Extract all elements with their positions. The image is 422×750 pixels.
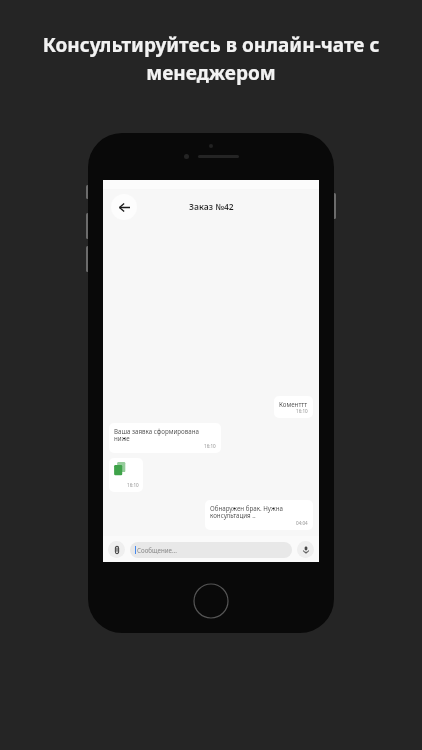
button[interactable]: Attach file [108,541,125,558]
button[interactable]: Обнаружен брак. Нужна консультация .. [205,500,313,530]
button[interactable]: Коменттт [274,396,313,418]
button[interactable]: Back [111,194,137,220]
staticText: 04:04 [296,520,308,526]
button[interactable]: Voice message [297,541,314,558]
staticText: Ваша заявка сформирована ниже [114,427,216,443]
staticText: Заказ №42 [189,201,234,213]
staticText: Консультируйтесь в онлайн-чате с менедже… [24,32,398,86]
staticText: Сообщение... [137,546,177,554]
staticText: 16:10 [296,408,308,414]
button[interactable]: Сообщение... [130,542,292,558]
button[interactable]: Attachment [109,458,143,492]
staticText: 16:10 [204,443,216,449]
staticText: Обнаружен брак. Нужна консультация .. [210,504,308,520]
button[interactable]: Home [193,583,229,619]
button[interactable]: Ваша заявка сформирована ниже [109,423,221,453]
staticText: 16:10 [127,482,139,488]
staticText: Коменттт [279,400,308,408]
